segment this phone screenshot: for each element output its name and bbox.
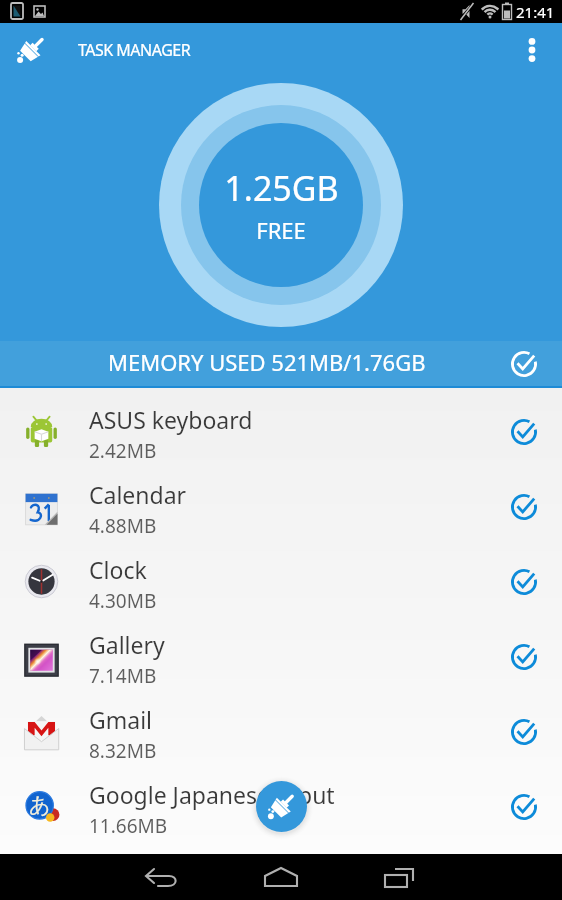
staticText: TASK MANAGER	[78, 39, 191, 61]
button[interactable]: Back	[138, 854, 184, 900]
button[interactable]: Recent apps	[378, 854, 424, 900]
button[interactable]: Gallery	[0, 619, 562, 694]
staticText: 4.30MB	[89, 588, 157, 614]
button[interactable]: MEMORY USED 521MB/1.76GB	[0, 341, 562, 386]
staticText: 2.42MB	[89, 438, 157, 464]
button[interactable]: Clean memory	[256, 781, 307, 832]
button[interactable]: Task manager logo	[7, 26, 55, 74]
staticText: Gmail	[89, 704, 153, 735]
staticText: 7.14MB	[89, 663, 157, 689]
button[interactable]: Clock	[0, 544, 562, 619]
staticText: 4.88MB	[89, 513, 157, 539]
staticText: 11.66MB	[89, 813, 168, 839]
staticText: 1.25GB	[224, 165, 339, 211]
staticText: Calendar	[89, 479, 187, 510]
staticText: 8.32MB	[89, 738, 157, 764]
button[interactable]: More options	[508, 26, 556, 74]
staticText: あ	[29, 792, 51, 818]
staticText: ASUS keyboard	[89, 404, 253, 435]
button[interactable]: Home	[258, 854, 304, 900]
staticText: FREE	[256, 215, 306, 245]
button[interactable]: あ	[0, 769, 562, 844]
button[interactable]: ASUS keyboard	[0, 394, 562, 469]
staticText: MEMORY USED 521MB/1.76GB	[108, 347, 426, 377]
button[interactable]: Gmail	[0, 694, 562, 769]
button[interactable]: Calendar	[0, 469, 562, 544]
staticText: Gallery	[89, 629, 165, 660]
staticText: Clock	[89, 554, 147, 585]
staticText: Google Japanese Input	[89, 779, 335, 810]
staticText: 21:41	[516, 2, 555, 22]
